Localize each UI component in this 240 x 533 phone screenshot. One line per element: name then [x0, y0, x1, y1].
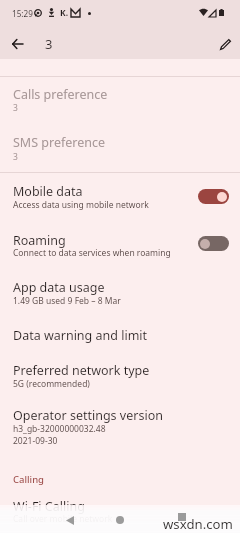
staticText: Mobile data: [13, 183, 83, 200]
staticText: Calling: [13, 473, 45, 486]
staticText: Preferred network type: [13, 362, 150, 379]
button[interactable]: [0, 269, 240, 317]
staticText: 3: [45, 35, 53, 53]
staticText: Roaming: [13, 232, 66, 249]
button[interactable]: [0, 352, 240, 397]
staticText: K.: [60, 7, 69, 19]
button[interactable]: [0, 221, 240, 269]
button[interactable]: Back: [0, 24, 37, 64]
staticText: h3_gb-32000000032.48: [13, 423, 106, 435]
button[interactable]: [0, 173, 240, 221]
staticText: Connect to data services when roaming: [13, 247, 171, 259]
staticText: 3: [13, 102, 18, 114]
staticText: 2021-09-30: [13, 435, 58, 447]
staticText: wsxdn.com: [163, 515, 233, 533]
button[interactable]: Back: [58, 508, 82, 532]
button[interactable]: Off: [198, 236, 229, 251]
staticText: 5G (recommended): [13, 378, 90, 390]
button[interactable]: Recent apps: [170, 505, 194, 529]
staticText: Wi-Fi Calling: [13, 498, 85, 515]
button[interactable]: Edit: [205, 24, 240, 64]
button[interactable]: [0, 317, 240, 352]
button[interactable]: [0, 124, 240, 172]
staticText: SMS preference: [13, 134, 106, 151]
staticText: Operator settings version: [13, 407, 163, 424]
staticText: Access data using mobile network: [13, 199, 149, 211]
staticText: Data warning and limit: [13, 327, 148, 344]
button[interactable]: Home: [108, 508, 132, 532]
staticText: 1.49 GB used 9 Feb – 8 Mar: [13, 295, 121, 307]
button[interactable]: [0, 490, 240, 533]
staticText: App data usage: [13, 279, 105, 296]
staticText: Call over mobile network: [13, 513, 113, 525]
staticText: 15:29: [12, 8, 33, 19]
staticText: 3: [13, 151, 18, 163]
button[interactable]: [0, 76, 240, 124]
button[interactable]: On: [198, 189, 229, 204]
staticText: Calls preference: [13, 86, 108, 103]
button[interactable]: [0, 397, 240, 455]
